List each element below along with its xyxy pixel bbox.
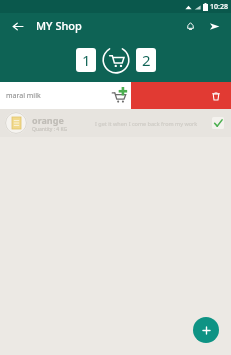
button[interactable]: Add (193, 317, 219, 343)
button[interactable]: maral milk (0, 82, 131, 109)
button[interactable]: Back (8, 17, 26, 35)
staticText: maral milk (6, 91, 41, 101)
staticText: orange (32, 114, 64, 126)
staticText: 1 (82, 50, 91, 70)
button[interactable]: 1 (76, 48, 96, 72)
button[interactable]: orange (0, 109, 231, 137)
button[interactable]: 2 (136, 48, 156, 72)
button[interactable]: Cart (102, 46, 130, 74)
button[interactable]: Notifications (181, 17, 199, 35)
staticText: 10:28 (210, 2, 228, 12)
button[interactable]: Send (205, 17, 223, 35)
staticText: 2 (142, 50, 151, 70)
staticText: I get it when I come back from my work (95, 120, 210, 127)
staticText: Quantity : 4 KG (32, 126, 68, 133)
staticText: MY Shop (36, 18, 82, 33)
button[interactable]: Add to cart (111, 88, 127, 104)
button[interactable]: Delete (131, 82, 231, 109)
button[interactable]: Mark done (210, 115, 226, 131)
